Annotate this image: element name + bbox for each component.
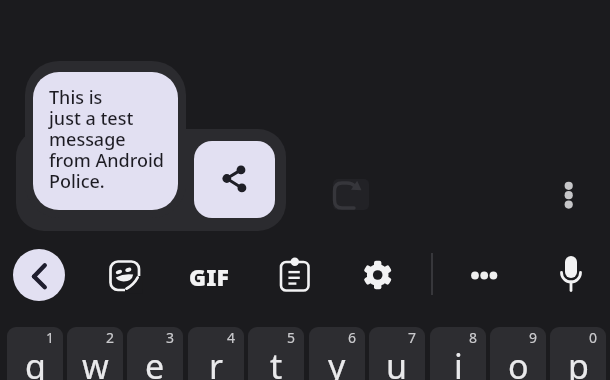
button[interactable] [104,255,146,297]
button[interactable]: 1 [7,327,63,380]
staticText: o [508,343,529,380]
staticText: 3 [166,328,175,347]
button[interactable] [556,176,582,216]
button[interactable]: 8 [430,327,486,380]
button[interactable] [330,176,364,212]
staticText: 6 [348,328,357,347]
button[interactable]: 9 [490,327,546,380]
button[interactable]: 6 [309,327,365,380]
staticText: 4 [227,328,236,347]
staticText: 9 [529,328,538,347]
button[interactable] [194,141,275,218]
button[interactable] [462,258,506,294]
button[interactable] [360,258,396,294]
button[interactable] [13,249,65,301]
staticText: r [209,343,224,380]
button[interactable]: 5 [248,327,304,380]
staticText: e [145,343,165,380]
staticText: t [270,343,283,380]
staticText: This is just a test message from Android… [49,85,164,194]
staticText: 7 [408,328,417,347]
button[interactable]: GIF [184,261,234,291]
staticText: 2 [106,328,115,347]
staticText: w [82,343,109,380]
button[interactable]: 7 [369,327,425,380]
staticText: q [25,343,46,380]
button[interactable] [552,250,592,296]
button[interactable]: 0 [550,327,606,380]
button[interactable]: This is just a test message from Android… [33,72,178,210]
button[interactable] [276,252,314,300]
button[interactable]: 3 [127,327,183,380]
staticText: 0 [589,328,598,347]
button[interactable]: 2 [67,327,123,380]
staticText: i [454,343,463,380]
staticText: p [568,343,589,380]
staticText: 1 [46,328,55,347]
staticText: 5 [287,328,296,347]
staticText: GIF [189,261,230,291]
button[interactable]: 4 [188,327,244,380]
staticText: u [386,343,408,380]
staticText: 8 [469,328,478,347]
staticText: y [328,343,346,380]
